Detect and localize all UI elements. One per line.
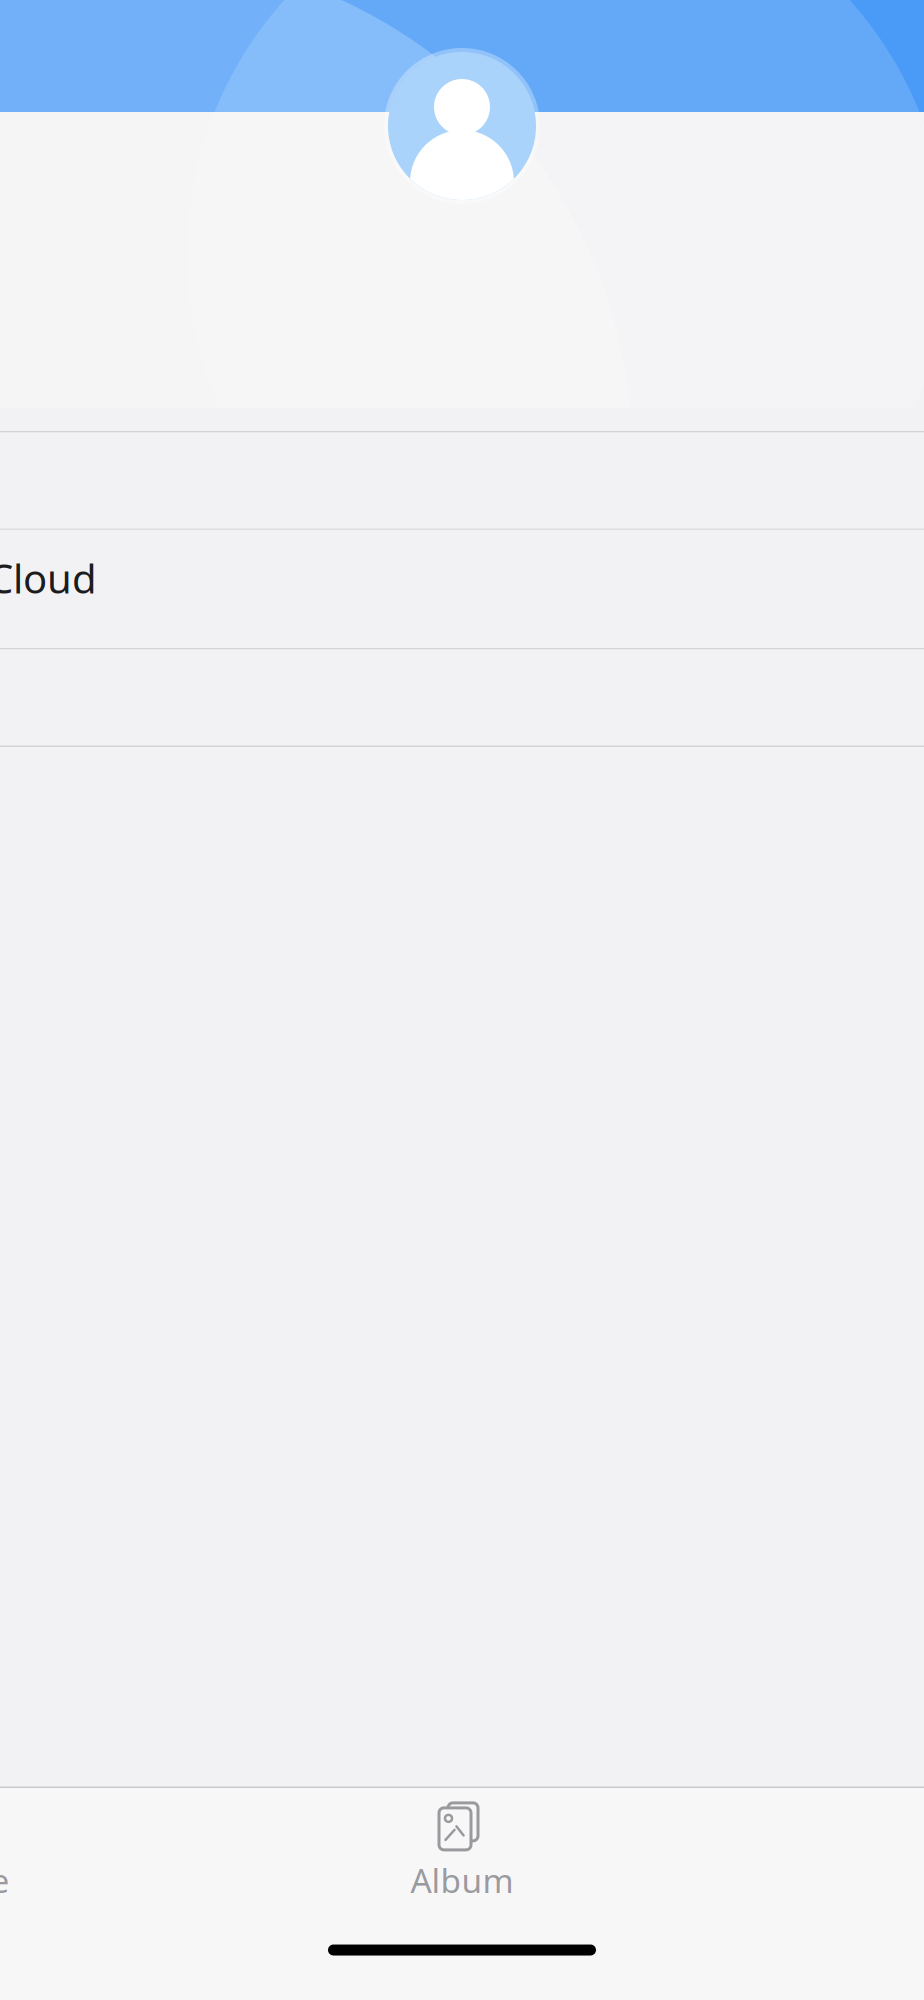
staticText: About AiCloud [0, 551, 97, 604]
button[interactable]: Album [212, 1788, 712, 1912]
button[interactable]: Home [0, 1788, 212, 1912]
staticText: Album [410, 1858, 513, 1902]
button[interactable]: About AiCloud [0, 530, 924, 626]
staticText: Home [0, 1858, 9, 1902]
